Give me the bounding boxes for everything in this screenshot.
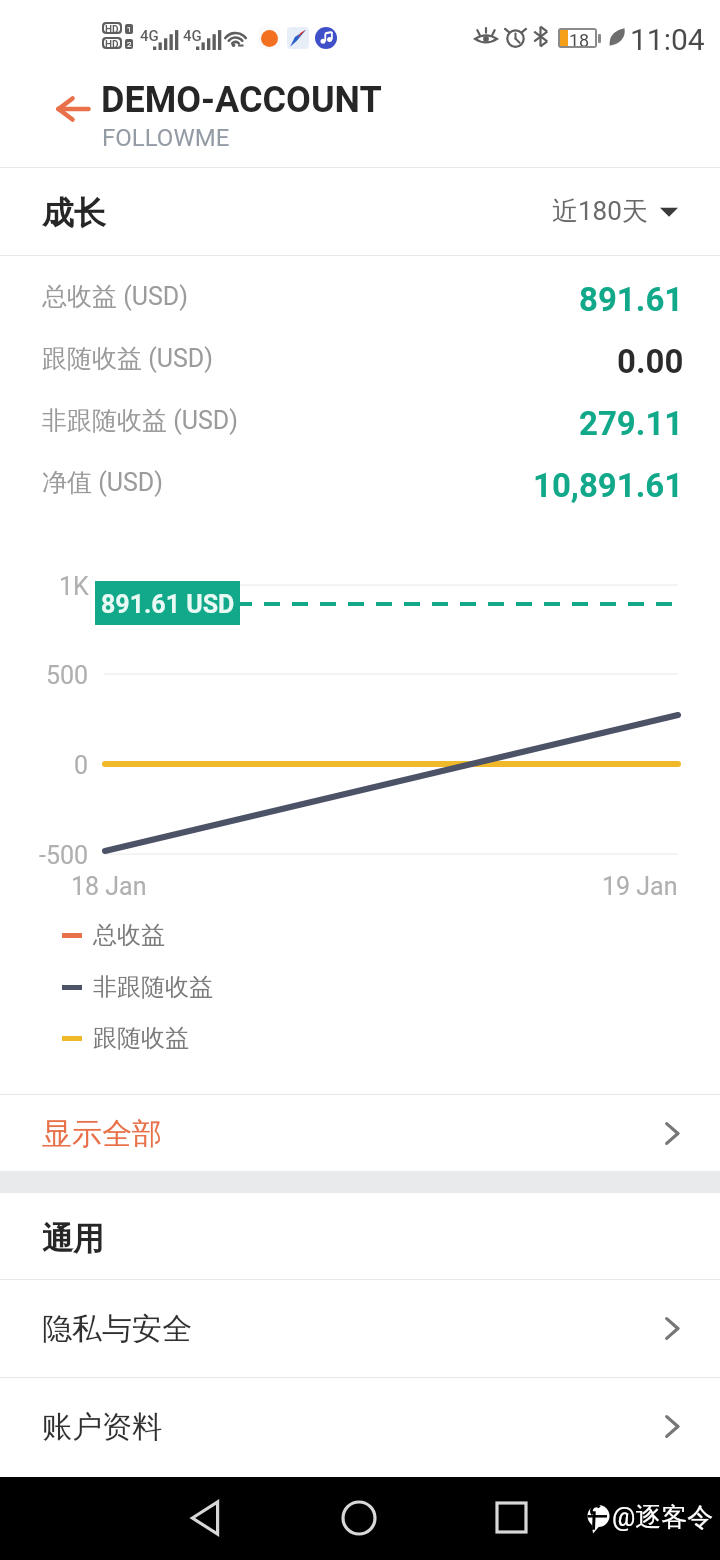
staticText: DEMO-ACCOUNT (101, 79, 382, 121)
button[interactable]: Recent apps (482, 1477, 542, 1560)
staticText: 隐私与安全 (42, 1310, 192, 1348)
staticText: 11:04 (630, 22, 705, 57)
staticText: 跟随收益 (USD) (42, 343, 213, 374)
staticText: @逐客令 (612, 1501, 714, 1534)
staticText: 19 Jan (602, 872, 678, 901)
staticText: 显示全部 (42, 1115, 162, 1153)
staticText: 0 (74, 751, 89, 780)
button[interactable]: Back (175, 1477, 235, 1560)
staticText: 891.61 USD (101, 590, 235, 619)
staticText: 1 (127, 25, 132, 34)
button[interactable]: 近180天 (552, 187, 678, 236)
staticText: -500 (39, 841, 89, 870)
staticText: 18 Jan (71, 872, 147, 901)
staticText: 非跟随收益 (93, 972, 213, 1002)
staticText: HD (105, 39, 119, 47)
staticText: 4G (140, 27, 159, 45)
staticText: HD (105, 24, 119, 32)
staticText: 近180天 (552, 195, 648, 228)
staticText: 279.11 (579, 404, 684, 443)
staticText: 18 (569, 30, 590, 46)
staticText: 成长 (42, 193, 106, 233)
staticText: 500 (46, 661, 89, 690)
staticText: 总收益 (USD) (42, 281, 188, 312)
staticText: 通用 (42, 1219, 104, 1258)
button[interactable]: 显示全部 (0, 1095, 720, 1172)
staticText: 2 (127, 40, 132, 49)
staticText: 1K (59, 572, 89, 601)
staticText: 非跟随收益 (USD) (42, 405, 238, 436)
staticText: 净值 (USD) (42, 467, 163, 498)
button[interactable]: Back (37, 73, 109, 145)
staticText: 账户资料 (42, 1408, 162, 1446)
button[interactable]: 隐私与安全 (0, 1280, 720, 1377)
staticText: FOLLOWME (102, 124, 230, 152)
staticText: 891.61 (579, 280, 684, 319)
staticText: 4G (183, 27, 202, 45)
staticText: 跟随收益 (93, 1023, 189, 1053)
staticText: 10,891.61 (533, 466, 684, 505)
button[interactable]: Home (329, 1477, 389, 1560)
staticText: 0.00 (617, 342, 684, 381)
staticText: 总收益 (93, 920, 165, 950)
button[interactable]: 账户资料 (0, 1378, 720, 1475)
